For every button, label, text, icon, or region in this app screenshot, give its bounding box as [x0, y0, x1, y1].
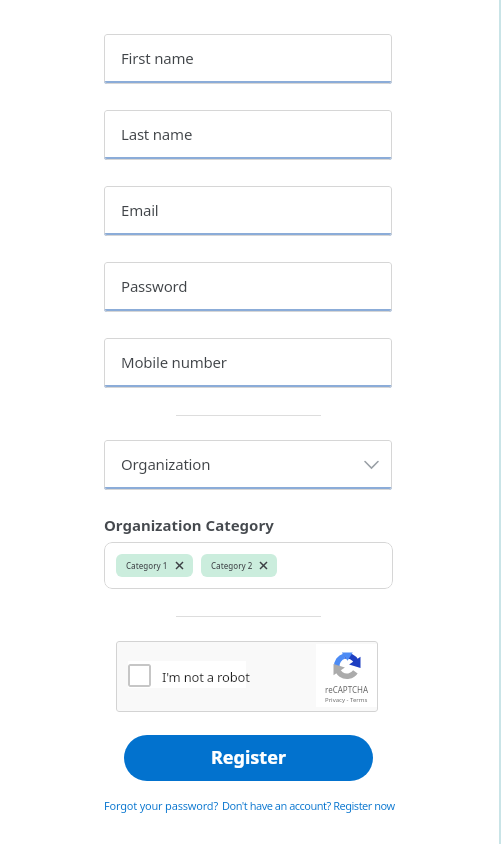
staticText: Mobile number — [121, 352, 227, 372]
staticText: Last name — [121, 124, 193, 144]
button[interactable]: Last name — [104, 110, 392, 160]
button[interactable]: Forgot your password? — [104, 798, 218, 813]
button[interactable]: Password — [104, 262, 392, 312]
button[interactable]: Don't have an account? Register now — [222, 798, 395, 813]
button[interactable]: Mobile number — [104, 338, 392, 388]
button[interactable]: Register — [124, 735, 373, 781]
button[interactable]: Category 1 — [116, 554, 193, 577]
button[interactable]: Organization — [104, 440, 392, 490]
staticText: Category 1 — [126, 560, 168, 571]
button[interactable]: Email — [104, 186, 392, 236]
button[interactable]: First name — [104, 34, 392, 84]
staticText: Organization Category — [104, 515, 274, 535]
staticText: Privacy - Terms — [325, 696, 368, 704]
staticText: I'm not a robot — [162, 668, 250, 686]
staticText: Password — [121, 276, 188, 296]
staticText: Organization — [121, 454, 211, 474]
staticText: Category 2 — [211, 560, 253, 571]
staticText: Register — [211, 745, 286, 770]
staticText: reCAPTCHA — [325, 684, 369, 695]
staticText: First name — [121, 48, 194, 68]
button[interactable]: I'm not a robot — [116, 641, 378, 712]
staticText: Email — [121, 200, 159, 220]
button[interactable]: Category 2 — [201, 554, 277, 577]
